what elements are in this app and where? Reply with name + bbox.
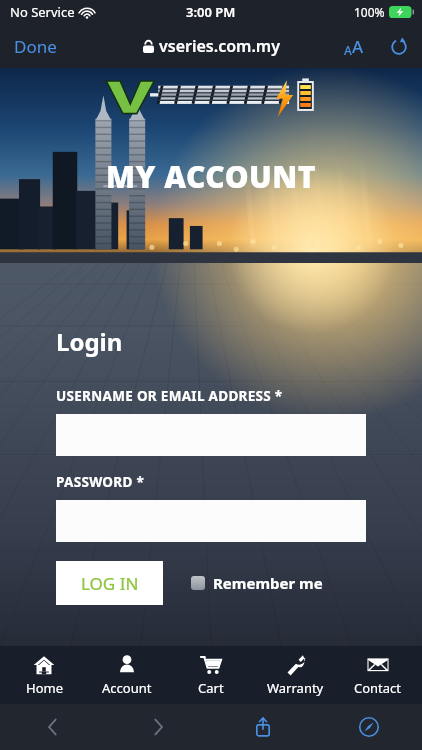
button[interactable]: Bookmarks xyxy=(316,704,422,750)
staticText: PASSWORD * xyxy=(56,473,145,491)
staticText: A xyxy=(344,42,352,58)
button[interactable]: Reload xyxy=(386,34,412,60)
button[interactable]: Done xyxy=(6,31,65,62)
button[interactable]: Warranty xyxy=(255,646,335,704)
staticText: LOG IN xyxy=(81,572,139,595)
staticText: MY ACCOUNT xyxy=(106,156,317,197)
staticText: No Service xyxy=(10,3,75,21)
button[interactable]: Contact xyxy=(338,646,418,704)
button[interactable]: LOG IN xyxy=(56,561,163,605)
staticText: Login xyxy=(56,325,123,358)
button[interactable]: Account xyxy=(87,646,167,704)
staticText: 100% xyxy=(354,4,385,20)
button[interactable]: Home xyxy=(4,646,84,704)
staticText: Contact xyxy=(354,679,402,697)
button[interactable]: Share xyxy=(210,704,316,750)
button[interactable]: Cart xyxy=(171,646,251,704)
staticText: Home xyxy=(26,679,63,697)
button[interactable]: Back xyxy=(0,704,105,750)
button[interactable]: Text size xyxy=(340,31,368,62)
staticText: vseries.com.my xyxy=(159,35,280,57)
staticText: Remember me xyxy=(213,573,323,593)
staticText: Account xyxy=(102,679,152,697)
button[interactable]: Remember me xyxy=(189,567,325,599)
staticText: Warranty xyxy=(267,679,324,697)
staticText: USERNAME OR EMAIL ADDRESS * xyxy=(56,387,283,405)
staticText: Cart xyxy=(198,679,224,697)
staticText: 3:00 PM xyxy=(186,3,236,21)
staticText: A xyxy=(352,35,364,58)
staticText: Done xyxy=(14,35,57,58)
button[interactable]: Forward xyxy=(105,704,210,750)
